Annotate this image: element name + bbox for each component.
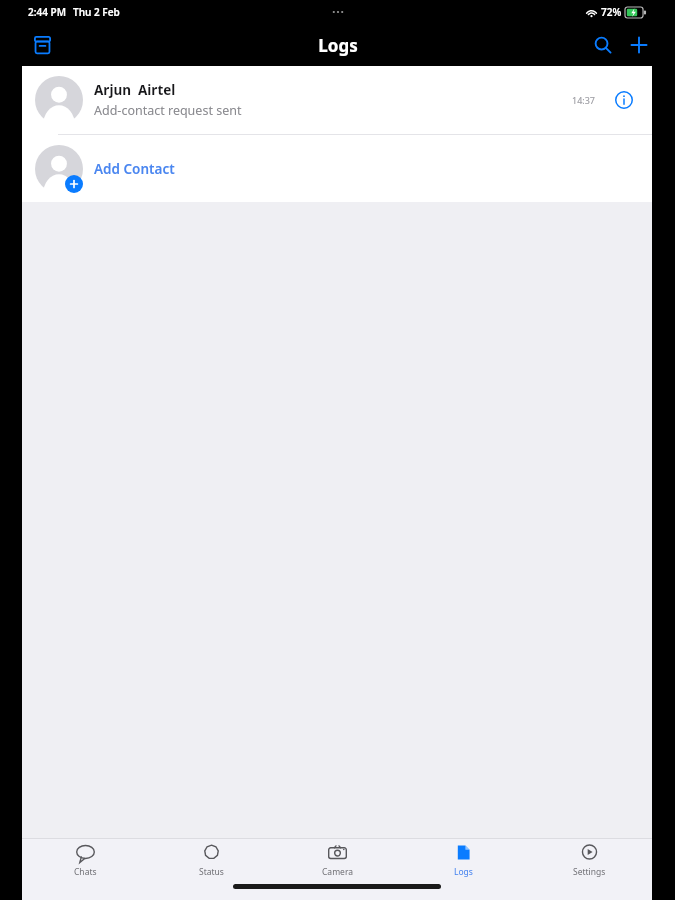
staticText: Settings	[573, 866, 606, 878]
staticText: Camera	[322, 866, 353, 878]
button[interactable]: New chat	[621, 27, 657, 63]
staticText: Thu 2 Feb	[73, 5, 120, 19]
button[interactable]: Status	[148, 839, 274, 882]
button[interactable]: Logs	[400, 839, 526, 882]
staticText: Add Contact	[94, 160, 175, 178]
staticText: Arjun Airtel	[94, 81, 176, 99]
button[interactable]: Chats	[22, 839, 148, 882]
staticText: Status	[199, 866, 224, 878]
staticText: 2:44 PM	[28, 5, 66, 19]
staticText: 72%	[601, 5, 622, 19]
button[interactable]: Camera	[274, 839, 400, 882]
staticText: Chats	[74, 866, 97, 878]
staticText: Logs	[318, 34, 358, 57]
button[interactable]: Add Contact	[22, 135, 652, 202]
button[interactable]: Info	[610, 86, 638, 114]
staticText: 14:37	[572, 94, 596, 106]
staticText: Add-contact request sent	[94, 102, 242, 119]
button[interactable]: Settings	[526, 839, 652, 882]
button[interactable]: Arjun Airtel	[22, 66, 652, 134]
button[interactable]: Archived	[22, 25, 62, 65]
button[interactable]: Search	[585, 27, 621, 63]
staticText: Logs	[454, 866, 473, 878]
